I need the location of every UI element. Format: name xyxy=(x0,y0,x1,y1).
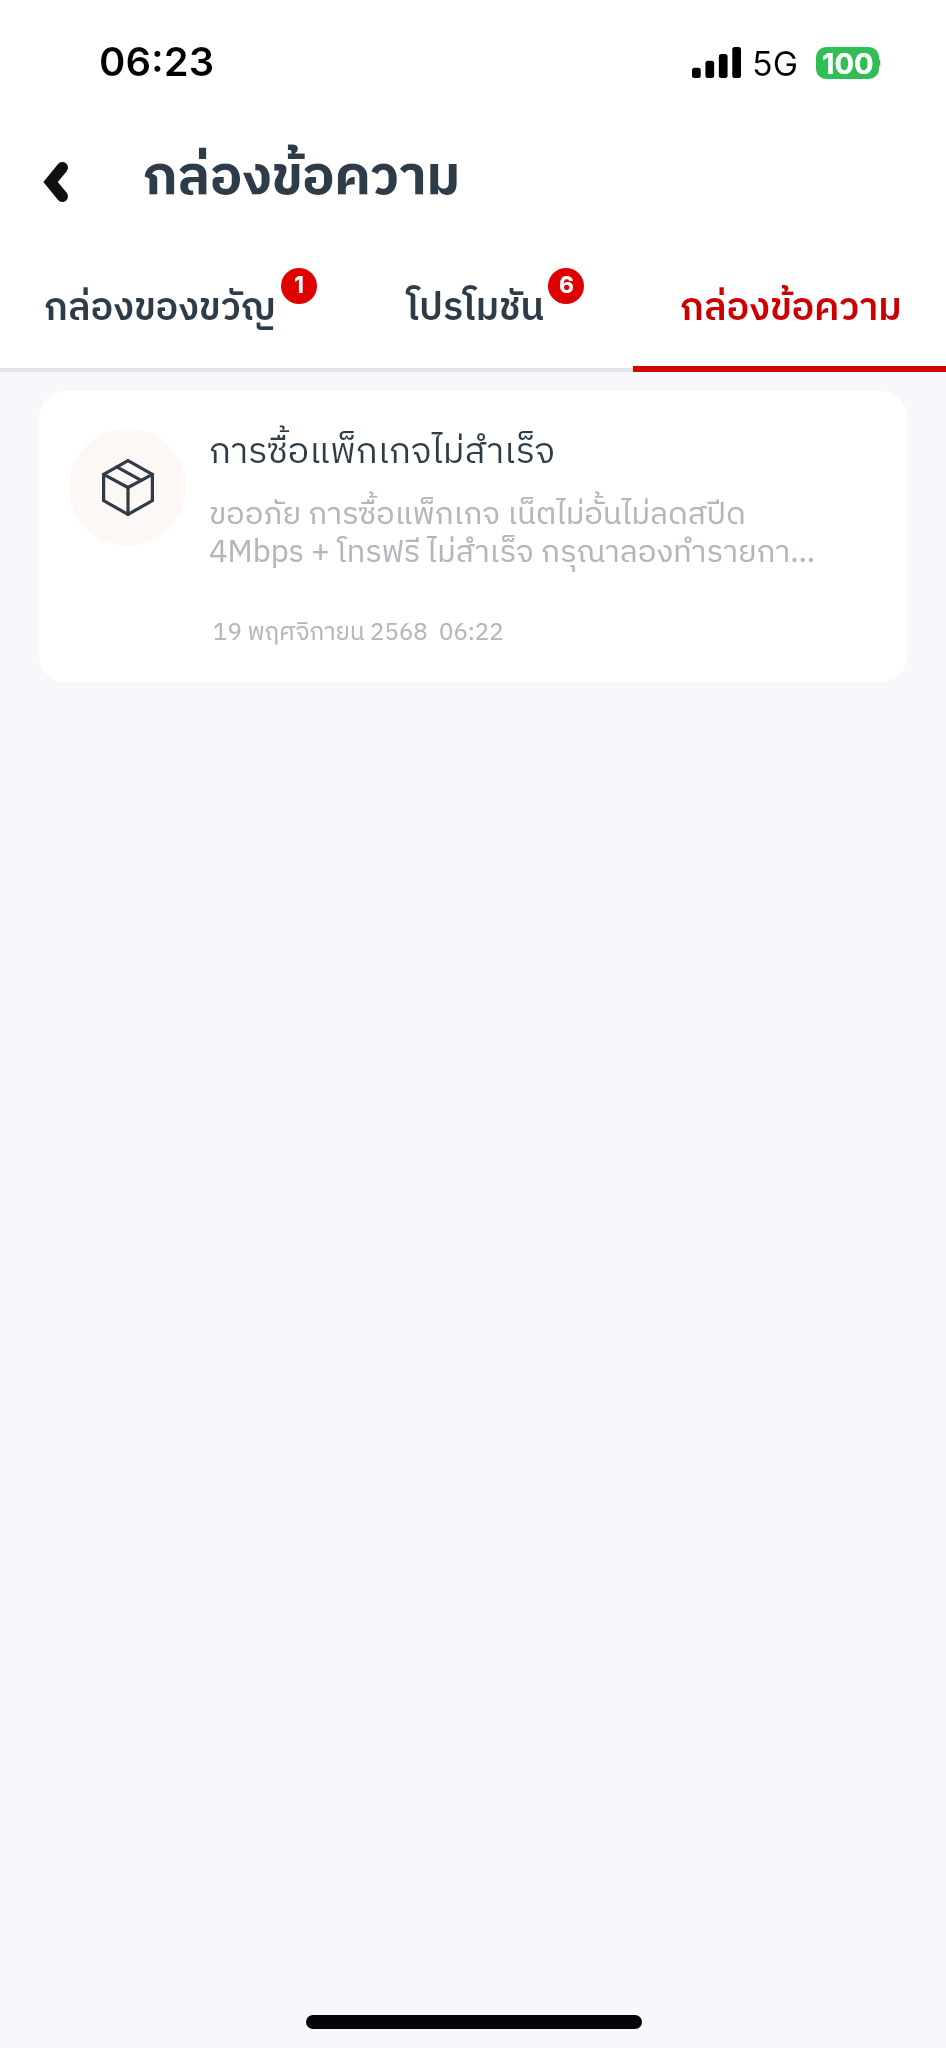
button[interactable]: กล่องข้อความ xyxy=(633,252,946,369)
button[interactable]: กล่องของขวัญ xyxy=(0,252,333,369)
staticText: 5G xyxy=(752,43,799,84)
staticText: กล่องของขวัญ xyxy=(44,278,276,341)
staticText: ขออภัย การซื้อแพ็กเกจ เน็ตไม่อั้นไม่ลดสป… xyxy=(209,489,829,578)
staticText: การซื้อแพ็กเกจไม่สำเร็จ xyxy=(209,423,556,482)
staticText: 19 พฤศจิกายน 2568 06:22 xyxy=(213,613,504,653)
staticText: 06:23 xyxy=(99,37,215,85)
button[interactable]: การซื้อแพ็กเกจไม่สำเร็จ xyxy=(39,391,907,682)
staticText: กล่องข้อความ xyxy=(143,134,461,223)
button[interactable]: โปรโมชัน xyxy=(370,252,615,369)
staticText: โปรโมชัน xyxy=(407,278,545,341)
staticText: 1 xyxy=(294,271,304,299)
staticText: 100 xyxy=(822,47,874,78)
staticText: 6 xyxy=(559,271,574,299)
button[interactable]: Back xyxy=(12,137,100,225)
staticText: กล่องข้อความ xyxy=(680,278,902,341)
